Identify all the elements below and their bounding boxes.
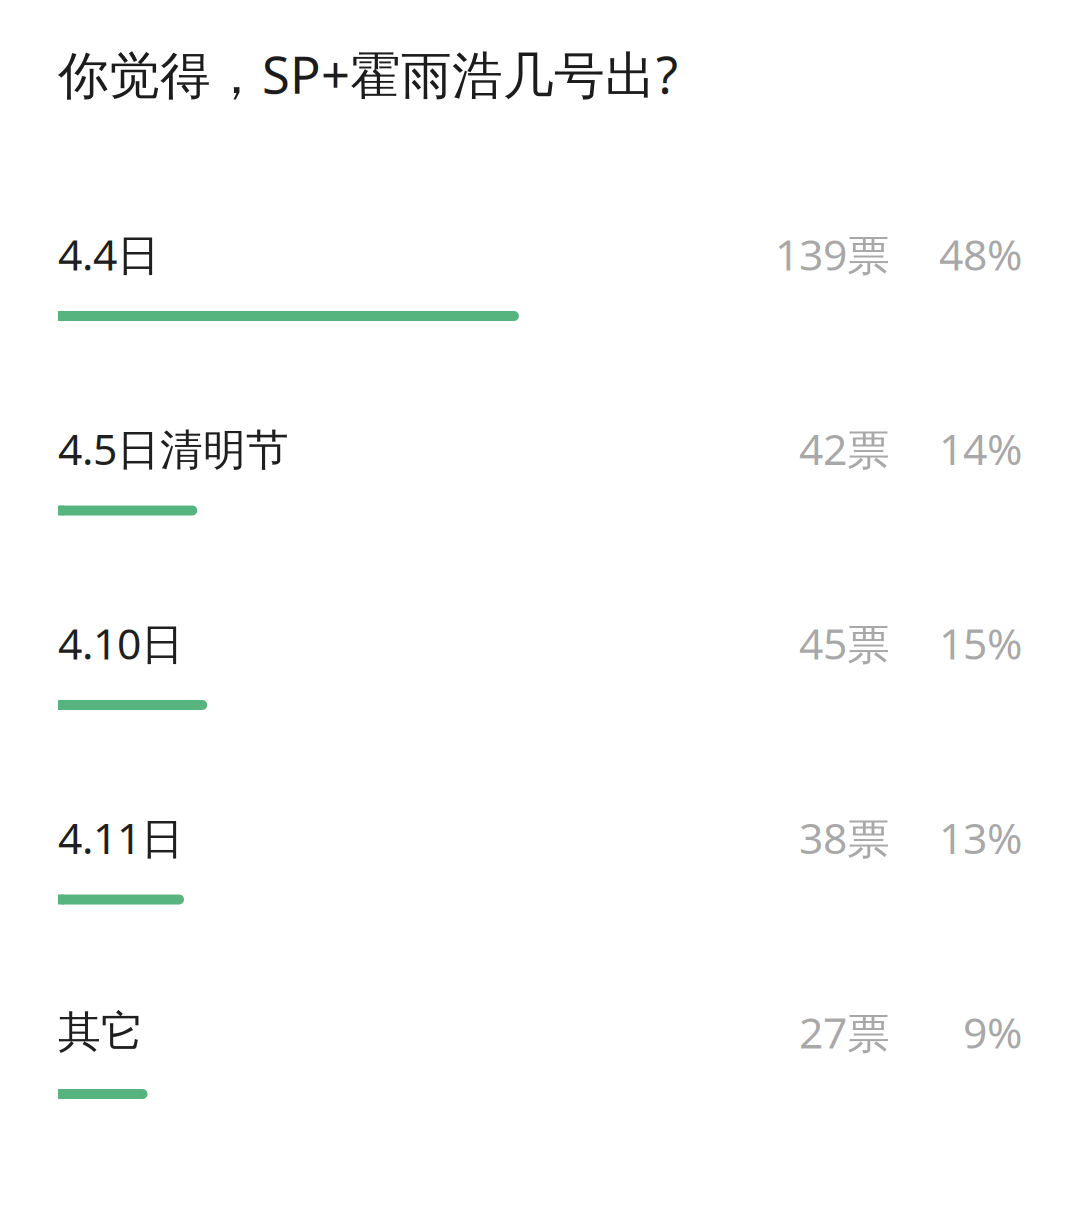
staticText: 45票 — [799, 615, 890, 671]
button[interactable]: 其它 — [58, 1015, 1022, 1209]
staticText: 15% — [939, 615, 1022, 671]
staticText: 42票 — [799, 420, 890, 477]
button[interactable]: 4.4日 — [58, 237, 1022, 431]
staticText: 38票 — [799, 809, 890, 866]
staticText: 9% — [963, 1004, 1022, 1060]
staticText: 14% — [939, 420, 1022, 477]
staticText: 4.11日 — [58, 809, 184, 866]
staticText: 13% — [939, 809, 1022, 866]
button[interactable]: 4.10日 — [58, 626, 1022, 820]
staticText: 27票 — [799, 1004, 890, 1060]
staticText: 你觉得，SP+霍雨浩几号出? — [58, 40, 678, 108]
staticText: 48% — [939, 226, 1022, 282]
staticText: 4.5日清明节 — [58, 420, 289, 477]
button[interactable]: 4.5日清明节 — [58, 431, 1022, 626]
button[interactable]: 4.11日 — [58, 820, 1022, 1015]
staticText: 4.10日 — [58, 615, 184, 671]
staticText: 139票 — [775, 226, 890, 282]
staticText: 其它 — [58, 1006, 144, 1058]
staticText: 4.4日 — [58, 226, 160, 282]
